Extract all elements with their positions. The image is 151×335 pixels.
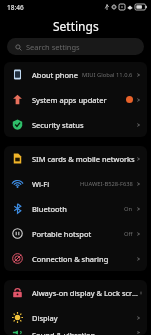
other: About phone <box>12 69 23 80</box>
other: Lock screen <box>12 287 23 298</box>
button[interactable]: Wi-Fi <box>4 171 147 196</box>
staticText: Search settings <box>26 42 80 52</box>
button[interactable]: Security status <box>4 112 147 137</box>
other: System apps updater <box>12 94 23 105</box>
staticText: About phone <box>32 70 78 80</box>
button[interactable]: Bluetooth <box>4 196 147 221</box>
button[interactable]: Sound and vibration <box>4 330 147 335</box>
button[interactable]: Search settings <box>7 38 144 55</box>
other: Display <box>12 312 23 323</box>
button[interactable]: Display <box>4 305 147 330</box>
other: Portable hotspot <box>12 228 23 239</box>
other: SIM cards <box>12 153 23 164</box>
other: Sound and vibration <box>12 330 23 335</box>
button[interactable]: Lock screen <box>4 280 147 305</box>
other: Connection and sharing <box>12 253 23 264</box>
other: Bluetooth <box>12 203 23 214</box>
staticText: Settings <box>53 18 99 34</box>
staticText: On <box>124 205 133 213</box>
button[interactable]: System apps updater <box>4 87 147 112</box>
staticText: System apps updater <box>32 95 107 105</box>
staticText: Security status <box>32 120 84 130</box>
staticText: MIUI Global 11.0.6 <box>82 71 133 79</box>
staticText: Portable hotspot <box>32 229 92 239</box>
staticText: Sound & vibration <box>32 330 96 335</box>
staticText: Connection & sharing <box>32 254 109 264</box>
staticText: SIM cards & mobile networks <box>32 154 135 164</box>
staticText: Wi-Fi <box>32 179 50 189</box>
staticText: Always-on display & Lock screen <box>32 288 141 298</box>
staticText: Bluetooth <box>32 204 67 214</box>
staticText: HUAWEI-B528-F638 <box>80 180 133 188</box>
button[interactable]: About phone <box>4 62 147 87</box>
button[interactable]: Portable hotspot <box>4 221 147 246</box>
other: Security status <box>12 119 23 130</box>
other: Wi-Fi <box>12 178 23 189</box>
staticText: Off <box>124 230 133 238</box>
button[interactable]: Connection and sharing <box>4 246 147 271</box>
staticText: Display <box>32 313 58 323</box>
staticText: 18:46 <box>7 3 24 12</box>
button[interactable]: SIM cards <box>4 146 147 171</box>
